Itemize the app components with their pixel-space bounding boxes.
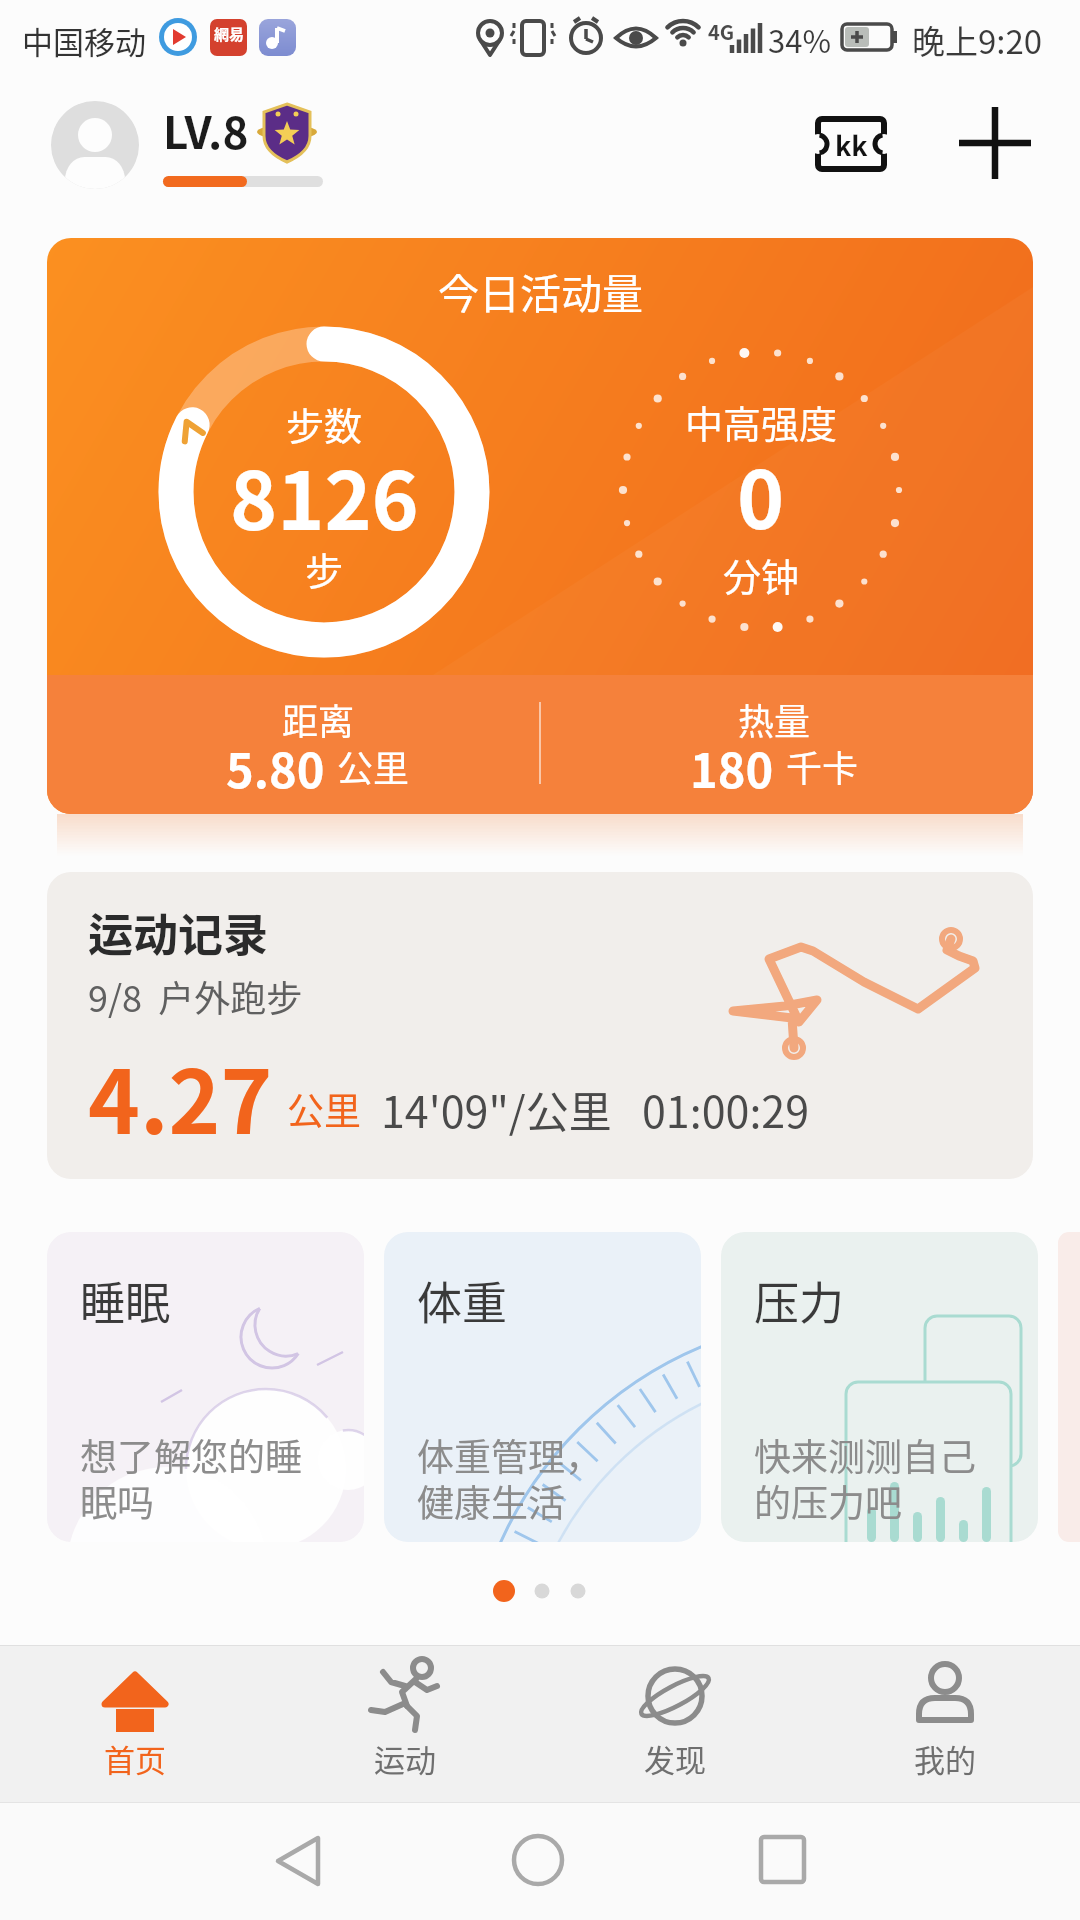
- staticText: 網易: [214, 23, 245, 45]
- staticText: 压力: [754, 1268, 845, 1333]
- button[interactable]: [51, 101, 139, 189]
- button[interactable]: [488, 1824, 588, 1904]
- staticText: 中国移动: [22, 18, 146, 63]
- button[interactable]: 体重: [384, 1232, 701, 1542]
- button[interactable]: [248, 1824, 348, 1904]
- staticText: 180: [690, 733, 774, 799]
- staticText: kk: [835, 125, 868, 164]
- staticText: 发现: [644, 1736, 706, 1780]
- button[interactable]: 运动记录: [47, 872, 1033, 1179]
- staticText: 8126: [230, 437, 419, 547]
- staticText: 5.80: [226, 733, 325, 799]
- staticText: 14'09"/公里: [381, 1078, 612, 1140]
- staticText: 9/8 户外跑步: [88, 970, 303, 1022]
- staticText: 晚上9:20: [912, 16, 1043, 64]
- staticText: 体重: [417, 1268, 508, 1333]
- staticText: 运动记录: [88, 900, 269, 965]
- button[interactable]: [732, 1824, 832, 1904]
- staticText: 运动: [374, 1736, 436, 1780]
- staticText: 0: [737, 436, 785, 546]
- button[interactable]: 首页: [40, 1645, 230, 1802]
- staticText: LV.8: [163, 98, 249, 162]
- staticText: 分钟: [723, 547, 800, 602]
- staticText: 01:00:29: [642, 1078, 810, 1140]
- button[interactable]: 我的: [850, 1645, 1040, 1802]
- staticText: 想了解您的睡 眠吗: [80, 1428, 302, 1528]
- staticText: 公里: [287, 1082, 361, 1136]
- staticText: 距离: [282, 693, 355, 745]
- staticText: 中高强度: [685, 394, 838, 449]
- button[interactable]: 运动: [310, 1645, 500, 1802]
- staticText: 4G: [708, 17, 735, 46]
- staticText: 今日活动量: [438, 261, 643, 320]
- staticText: 快来测测自己 的压力吧: [754, 1428, 976, 1528]
- button[interactable]: kk: [810, 111, 892, 177]
- staticText: 步数: [286, 396, 363, 451]
- button[interactable]: 睡眠: [47, 1232, 364, 1542]
- button[interactable]: 发现: [580, 1645, 770, 1802]
- staticText: 公里: [337, 740, 410, 792]
- staticText: 热量: [738, 693, 811, 745]
- staticText: 千卡: [786, 740, 859, 792]
- staticText: 34%: [768, 17, 831, 62]
- staticText: 睡眠: [80, 1268, 171, 1333]
- staticText: 我的: [914, 1736, 976, 1780]
- button[interactable]: [955, 103, 1035, 183]
- button[interactable]: 今日活动量: [47, 238, 1033, 814]
- staticText: 步: [305, 541, 344, 596]
- button[interactable]: 压力: [721, 1232, 1038, 1542]
- staticText: 体重管理， 健康生活: [417, 1428, 602, 1528]
- staticText: 4.27: [88, 1032, 273, 1152]
- staticText: 首页: [104, 1736, 166, 1780]
